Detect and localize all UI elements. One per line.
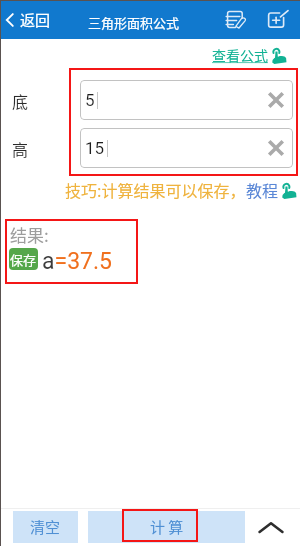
staticText: 5 [85, 90, 95, 110]
button[interactable]: New note [257, 0, 296, 39]
button[interactable]: Clear [259, 81, 293, 119]
staticText: 教程 [246, 178, 279, 201]
staticText: 底 [12, 89, 29, 112]
staticText: 15 [85, 138, 105, 158]
button[interactable]: 计 算 [88, 511, 245, 543]
staticText: 高 [12, 137, 29, 160]
staticText: 保存 [10, 250, 37, 269]
staticText: a=37.5 [42, 248, 112, 275]
button[interactable]: Notes [215, 0, 254, 39]
button[interactable]: 返回 [0, 0, 57, 39]
button[interactable]: 5 [80, 80, 293, 120]
staticText: 清空 [30, 516, 61, 538]
staticText: 计 算 [150, 516, 184, 538]
button[interactable]: 15 [80, 128, 293, 168]
staticText: 三角形面积公式 [88, 13, 180, 32]
button[interactable]: 保存 [9, 248, 38, 270]
staticText: 返回 [20, 9, 51, 31]
staticText: 查看公式 [212, 45, 268, 65]
button[interactable]: 查看公式 [212, 45, 300, 65]
staticText: 结果: [10, 222, 49, 247]
button[interactable]: Clear [259, 129, 293, 167]
button[interactable]: 教程 [246, 178, 297, 201]
button[interactable]: 清空 [13, 511, 78, 543]
button[interactable]: Hide keyboard [248, 508, 294, 546]
staticText: 技巧:计算结果可以保存， [65, 178, 246, 201]
